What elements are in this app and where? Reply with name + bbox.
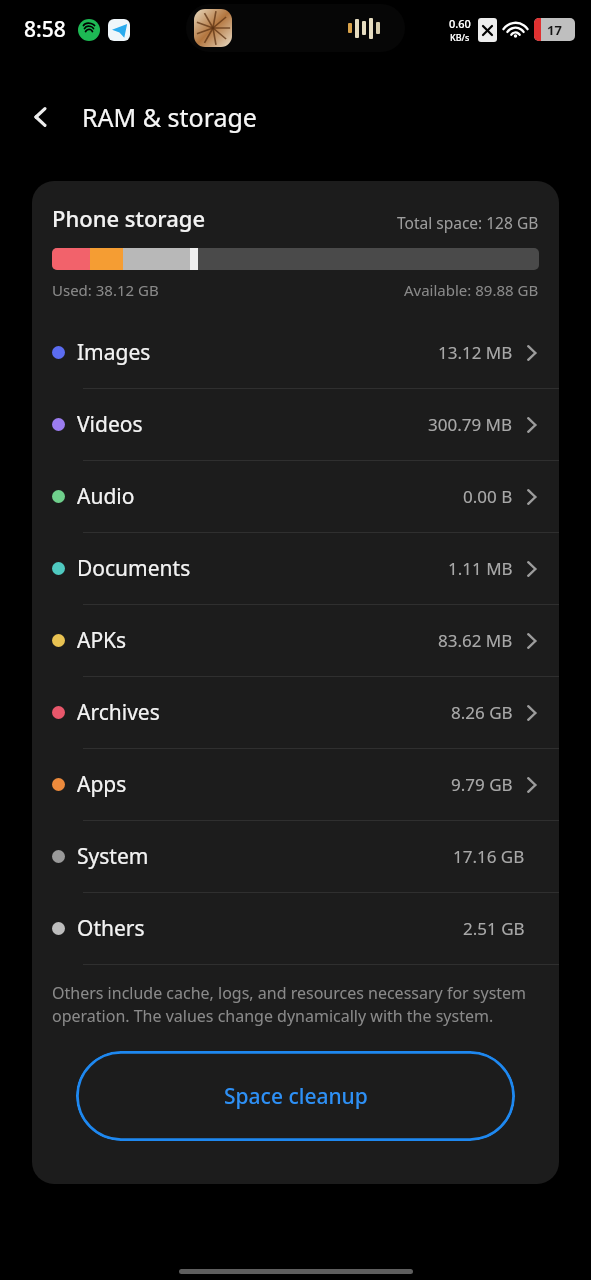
staticText: 13.12 MB [438, 341, 513, 364]
staticText: 1.11 MB [448, 557, 513, 580]
button[interactable]: Audio [32, 461, 559, 532]
staticText: Others include cache, logs, and resource… [52, 982, 541, 1027]
staticText: Space cleanup [224, 1082, 368, 1111]
staticText: Videos [77, 410, 143, 439]
staticText: System [77, 842, 149, 871]
button[interactable]: Archives [32, 677, 559, 748]
button[interactable]: Back [18, 94, 64, 140]
staticText: KB/s [450, 31, 470, 43]
staticText: Total space: 128 GB [397, 212, 539, 233]
staticText: 8.26 GB [451, 701, 513, 724]
button[interactable]: Others [32, 893, 559, 964]
staticText: Archives [77, 698, 160, 727]
button[interactable]: APKs [32, 605, 559, 676]
staticText: 83.62 MB [438, 629, 513, 652]
button[interactable]: Images [32, 317, 559, 388]
staticText: Available: 89.88 GB [404, 280, 539, 300]
staticText: 0.60 [449, 16, 471, 31]
staticText: 17 [547, 21, 562, 39]
button[interactable]: Apps [32, 749, 559, 820]
staticText: 17.16 GB [453, 845, 525, 868]
staticText: 9.79 GB [451, 773, 513, 796]
staticText: Audio [77, 482, 135, 511]
staticText: Others [77, 914, 145, 943]
staticText: 300.79 MB [428, 413, 513, 436]
staticText: Documents [77, 554, 191, 583]
button[interactable]: System [32, 821, 559, 892]
button[interactable]: Documents [32, 533, 559, 604]
staticText: 2.51 GB [463, 917, 525, 940]
staticText: 8:58 [24, 15, 66, 44]
button[interactable]: Videos [32, 389, 559, 460]
staticText: Apps [77, 770, 127, 799]
staticText: APKs [77, 626, 127, 655]
staticText: 0.00 B [463, 485, 513, 508]
staticText: RAM & storage [82, 100, 257, 134]
staticText: Images [77, 338, 151, 367]
staticText: Phone storage [52, 203, 206, 233]
button[interactable]: Space cleanup [76, 1051, 515, 1141]
staticText: Used: 38.12 GB [52, 280, 159, 300]
